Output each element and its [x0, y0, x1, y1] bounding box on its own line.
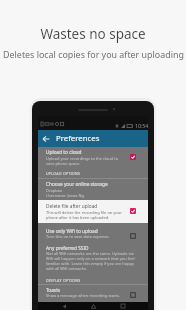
staticText: Wastes no space: [40, 25, 146, 43]
button[interactable]: [130, 292, 136, 298]
staticText: Not all Wifi networks are the same. Uplo…: [46, 251, 134, 256]
staticText: Wifi will happen only on a network that …: [46, 256, 135, 261]
staticText: Choose your online storage: [46, 181, 108, 188]
staticText: Turn this on to save data expense.: [46, 234, 110, 239]
staticText: Deletes local copies for you after uploa…: [3, 48, 184, 60]
staticText: Use only Wifi to upload: [46, 228, 98, 235]
button[interactable]: [38, 200, 148, 223]
staticText: Any preferred SSID: [46, 245, 89, 252]
button[interactable]: Back: [41, 134, 51, 144]
staticText: save phone space.: [46, 161, 81, 166]
button[interactable]: [38, 146, 148, 168]
staticText: This will delete the recording file on y…: [46, 210, 122, 215]
staticText: Delete file after upload: [46, 203, 98, 210]
staticText: Upload to cloud: [46, 149, 82, 156]
staticText: Dropbox: [46, 188, 63, 193]
staticText: 10:54: [135, 122, 149, 129]
staticText: Upload your recordings to the cloud to: [46, 156, 119, 161]
staticText: phone after it has been uploaded.: [46, 215, 110, 220]
button[interactable]: [38, 224, 148, 241]
staticText: Username: Jonas Ng: [46, 193, 84, 198]
staticText: DISPLAY OPTIONS: [46, 278, 81, 283]
staticText: familiar with. Leave this empty if you a…: [46, 261, 134, 266]
button[interactable]: [130, 208, 136, 214]
button[interactable]: [38, 179, 148, 200]
button[interactable]: Back: [60, 302, 68, 310]
button[interactable]: [130, 233, 136, 239]
staticText: UPLOAD OPTIONS: [46, 171, 81, 176]
button[interactable]: [38, 130, 148, 147]
button[interactable]: Recents: [119, 302, 127, 310]
staticText: Show a message when recording starts.: [46, 293, 120, 298]
button[interactable]: Home: [89, 302, 97, 310]
button[interactable]: [130, 154, 136, 160]
staticText: with all Wifi networks.: [46, 266, 87, 271]
button[interactable]: [38, 200, 148, 223]
button[interactable]: [38, 285, 148, 301]
staticText: Toasts: [46, 287, 61, 294]
button[interactable]: [38, 242, 148, 272]
staticText: Preferences: [56, 133, 100, 144]
